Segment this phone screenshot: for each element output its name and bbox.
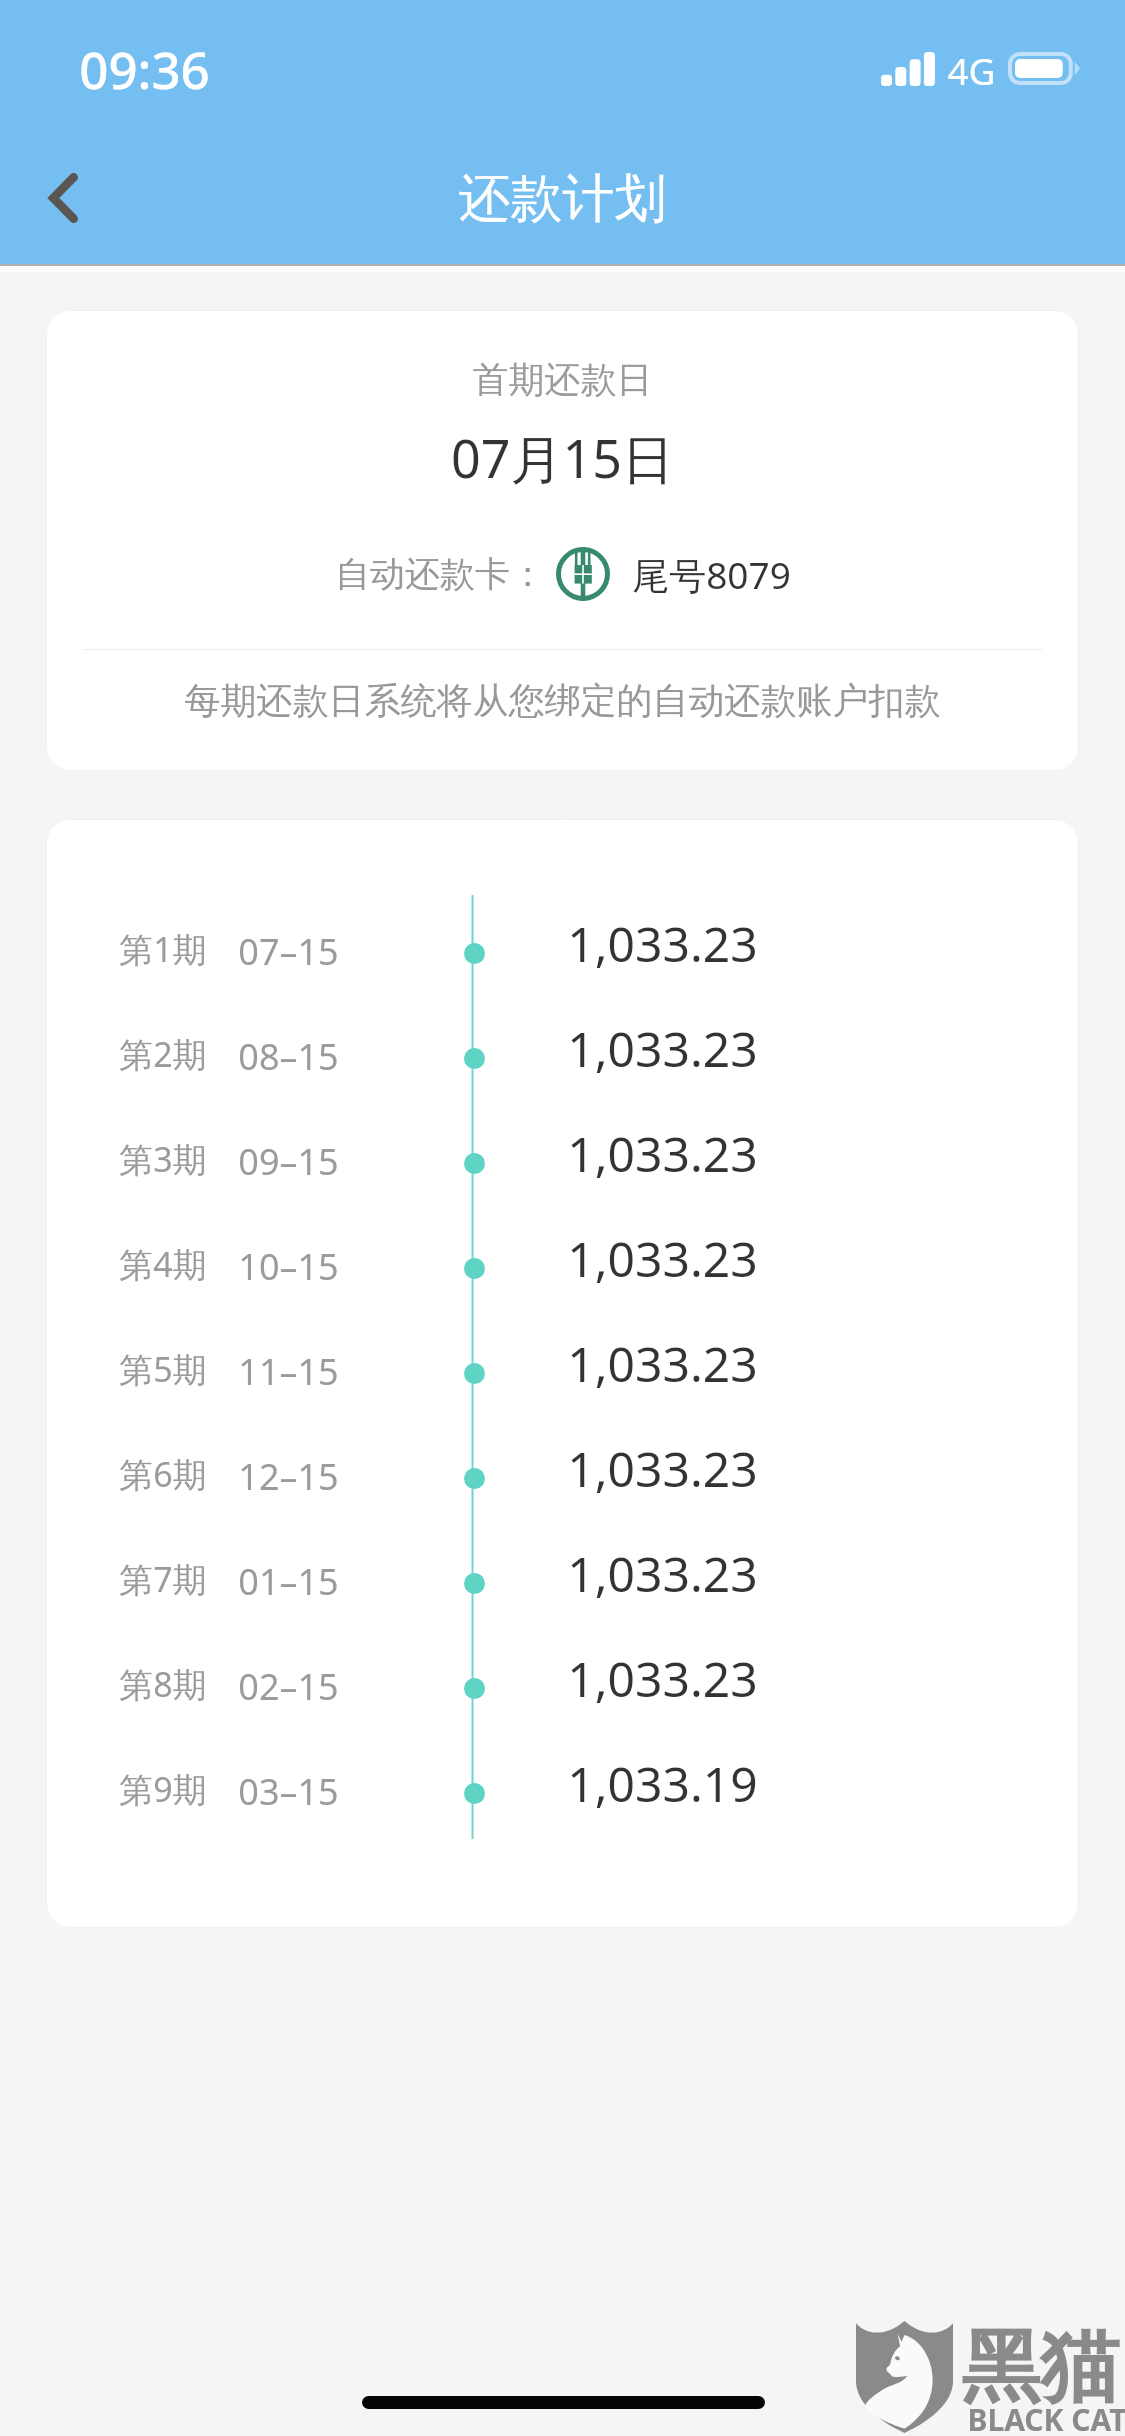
staticText: BLACK CAT <box>967 2399 1125 2436</box>
button[interactable]: 自动还款卡： <box>46 546 1079 602</box>
staticText: 12–15 <box>238 1452 339 1501</box>
button[interactable]: 第9期 <box>46 1741 1079 1846</box>
button[interactable]: 第7期 <box>46 1531 1079 1636</box>
staticText: 07–15 <box>238 927 339 976</box>
staticText: 首期还款日 <box>46 357 1079 402</box>
staticText: 第9期 <box>119 1766 207 1812</box>
staticText: 第6期 <box>119 1451 207 1497</box>
button[interactable]: Back <box>8 143 118 253</box>
staticText: 第7期 <box>119 1556 207 1602</box>
staticText: 09:36 <box>79 34 210 103</box>
staticText: 还款计划 <box>0 166 1125 232</box>
staticText: 1,033.19 <box>567 1751 758 1816</box>
staticText: 11–15 <box>238 1347 339 1396</box>
button[interactable]: 第6期 <box>46 1426 1079 1531</box>
button[interactable]: 第3期 <box>46 1111 1079 1216</box>
button[interactable]: 第4期 <box>46 1216 1079 1321</box>
staticText: 1,033.23 <box>567 1646 758 1711</box>
staticText: 第2期 <box>119 1031 207 1077</box>
staticText: 第3期 <box>119 1136 207 1182</box>
staticText: 黑猫 <box>961 2318 1119 2418</box>
staticText: 第4期 <box>119 1241 207 1287</box>
button[interactable]: 第1期 <box>46 901 1079 1006</box>
staticText: 1,033.23 <box>567 911 758 976</box>
staticText: 1,033.23 <box>567 1331 758 1396</box>
staticText: 每期还款日系统将从您绑定的自动还款账户扣款 <box>46 678 1079 723</box>
staticText: 08–15 <box>238 1032 339 1081</box>
staticText: 01–15 <box>238 1557 339 1606</box>
staticText: 07月15日 <box>46 422 1079 493</box>
staticText: 02–15 <box>238 1662 339 1711</box>
staticText: 1,033.23 <box>567 1541 758 1606</box>
staticText: 第1期 <box>119 926 207 972</box>
staticText: 第8期 <box>119 1661 207 1707</box>
staticText: 03–15 <box>238 1767 339 1816</box>
staticText: 10–15 <box>238 1242 339 1291</box>
staticText: 1,033.23 <box>567 1226 758 1291</box>
button[interactable]: 第8期 <box>46 1636 1079 1741</box>
button[interactable]: 第5期 <box>46 1321 1079 1426</box>
staticText: 1,033.23 <box>567 1016 758 1081</box>
staticText: 4G <box>947 45 996 95</box>
staticText: 第5期 <box>119 1346 207 1392</box>
staticText: 尾号8079 <box>632 549 791 600</box>
button[interactable]: 第2期 <box>46 1006 1079 1111</box>
staticText: 自动还款卡： <box>335 552 545 596</box>
staticText: 1,033.23 <box>567 1121 758 1186</box>
staticText: 09–15 <box>238 1137 339 1186</box>
staticText: 1,033.23 <box>567 1436 758 1501</box>
